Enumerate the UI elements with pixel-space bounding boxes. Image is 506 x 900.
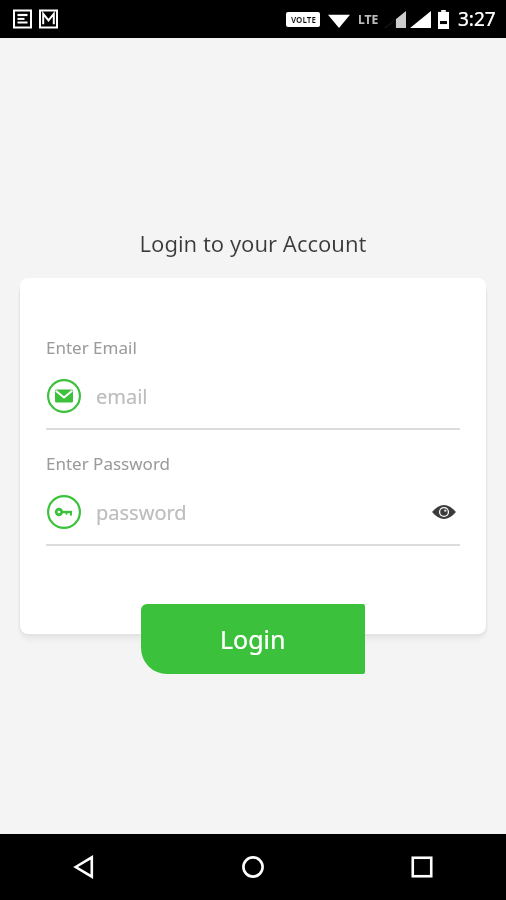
button[interactable]: Show password <box>424 492 464 532</box>
staticText: Login to your Account <box>0 228 506 258</box>
staticText: Login <box>220 622 286 656</box>
button[interactable]: Login <box>141 604 365 674</box>
staticText: email <box>96 383 148 410</box>
staticText: LTE <box>358 11 379 27</box>
button[interactable]: email <box>20 376 486 416</box>
button[interactable]: Back <box>0 834 168 900</box>
staticText: 3:27 <box>458 6 496 32</box>
staticText: Enter Email <box>46 336 137 359</box>
staticText: VOLTE <box>291 14 316 25</box>
staticText: Enter Password <box>46 452 171 475</box>
button[interactable]: Home <box>168 834 337 900</box>
button[interactable]: password <box>20 492 486 532</box>
staticText: password <box>96 499 187 526</box>
button[interactable]: Recent apps <box>337 834 506 900</box>
